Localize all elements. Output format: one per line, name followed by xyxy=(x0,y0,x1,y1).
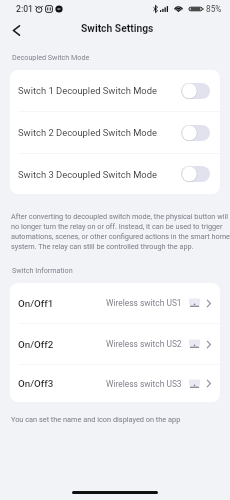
button[interactable]: Back xyxy=(5,19,27,41)
staticText: Wireless switch US2 xyxy=(106,339,182,349)
staticText: 85% xyxy=(206,4,222,14)
button[interactable]: On/Off1 xyxy=(10,283,220,323)
staticText: On/Off1 xyxy=(18,298,54,309)
button[interactable]: Switch 3 Decoupled Switch Mode xyxy=(10,154,220,194)
staticText: You can set the name and icon displayed … xyxy=(11,415,181,424)
staticText: Wireless switch US3 xyxy=(106,379,182,389)
staticText: Switch Information xyxy=(12,266,73,274)
staticText: After converting to decoupled switch mod… xyxy=(11,212,230,251)
staticText: Decoupled Switch Mode xyxy=(12,53,90,61)
staticText: Switch Settings xyxy=(81,22,154,34)
staticText: On/Off3 xyxy=(18,378,54,389)
staticText: Switch 3 Decoupled Switch Mode xyxy=(18,169,181,180)
button[interactable]: On/Off3 xyxy=(10,365,220,402)
staticText: Switch 1 Decoupled Switch Mode xyxy=(18,85,181,96)
staticText: On/Off2 xyxy=(18,339,54,350)
button[interactable]: Switch 2 Decoupled Switch Mode xyxy=(10,112,220,153)
staticText: 2:01 xyxy=(16,4,33,14)
button[interactable]: On/Off2 xyxy=(10,324,220,364)
staticText: Switch 2 Decoupled Switch Mode xyxy=(18,127,181,138)
button[interactable]: Switch 1 Decoupled Switch Mode xyxy=(10,70,220,111)
staticText: Wireless switch US1 xyxy=(106,298,182,308)
